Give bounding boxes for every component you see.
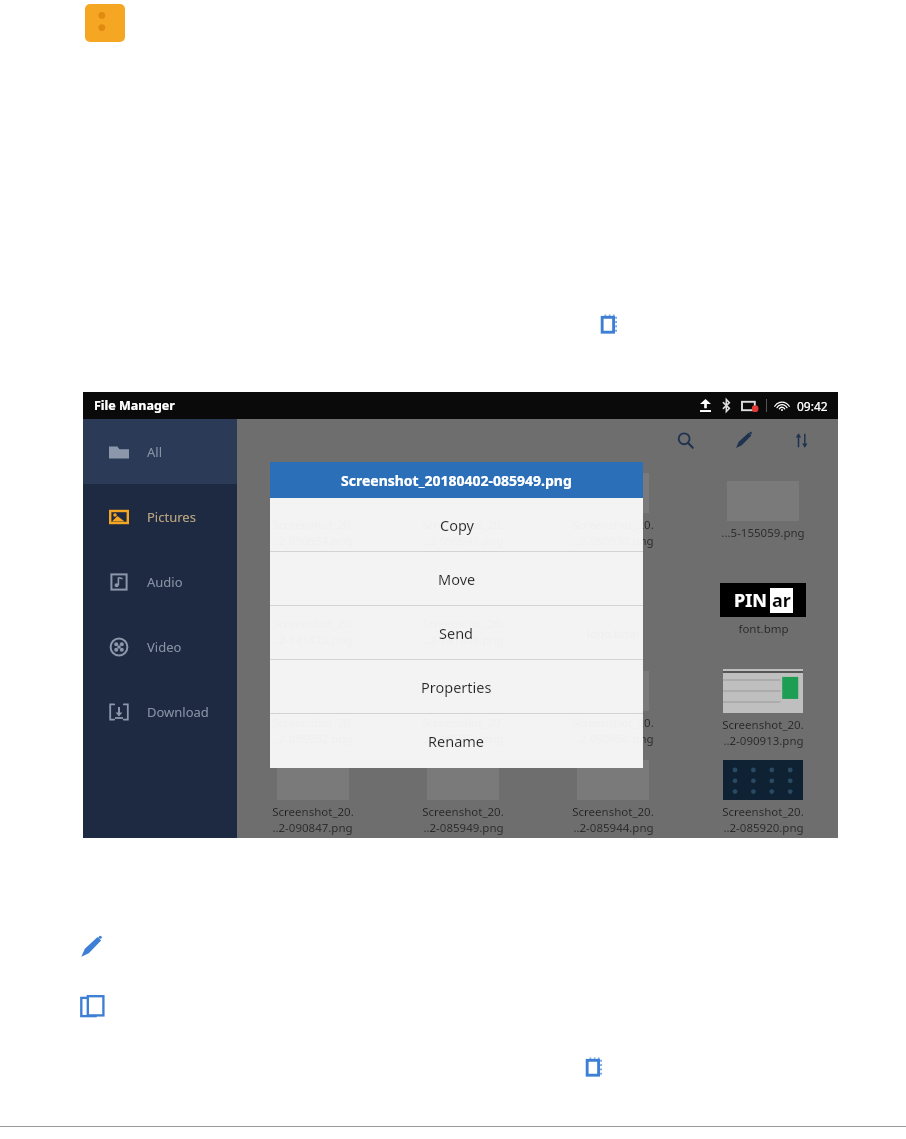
staticText: ..2-085944.png <box>573 820 654 836</box>
staticText: Screenshot_20180402-085949.png <box>341 471 572 490</box>
button[interactable]: Screenshot <box>598 313 624 337</box>
button[interactable]: All <box>83 419 237 484</box>
button[interactable]: Sort <box>786 425 816 455</box>
button[interactable]: Send <box>270 606 643 660</box>
button[interactable]: PIN <box>688 560 838 659</box>
staticText: Move <box>438 569 476 589</box>
staticText: Screenshot_20. <box>572 715 654 731</box>
staticText: ..2-090947.png <box>423 533 504 549</box>
button[interactable]: ...5-155059.png <box>688 461 838 560</box>
button[interactable]: Screenshot_20. <box>538 461 688 560</box>
button[interactable]: Screenshot_20. <box>388 659 538 758</box>
button[interactable]: Screenshot_20. <box>388 461 538 560</box>
button[interactable]: Copy <box>80 995 106 1019</box>
staticText: ..2-085920.png <box>723 820 804 836</box>
staticText: ..2-085949.png <box>423 820 504 836</box>
staticText: Screenshot_20. <box>422 804 504 820</box>
staticText: All <box>147 443 163 461</box>
button[interactable]: Screenshot_20. <box>388 560 538 659</box>
staticText: ..2-085951.png <box>423 731 504 747</box>
staticText: PIN <box>734 588 767 613</box>
staticText: ar <box>772 588 791 613</box>
staticText: Properties <box>421 677 492 697</box>
staticText: ..2-141408.png <box>423 632 504 648</box>
button[interactable]: Video <box>83 614 237 679</box>
staticText: Screenshot_20. <box>272 804 354 820</box>
staticText: Screenshot_20. <box>572 517 654 533</box>
button[interactable]: Screenshot_20. <box>388 758 538 838</box>
staticText: Screenshot_20. <box>422 517 504 533</box>
button[interactable]: Screenshot_20. <box>237 758 388 838</box>
staticText: File Manager <box>94 397 175 414</box>
staticText: ..2-090913.png <box>723 733 804 749</box>
button[interactable]: Audio <box>83 549 237 614</box>
button[interactable]: Copy <box>270 498 643 552</box>
staticText: Screenshot_20. <box>722 717 804 733</box>
button[interactable]: Edit <box>80 936 102 958</box>
button[interactable]: Screenshot_20. <box>237 659 388 758</box>
staticText: Rename <box>428 731 485 751</box>
button[interactable]: Screenshot_20. <box>237 461 388 560</box>
staticText: Send <box>439 623 474 643</box>
button[interactable]: Screenshot_20. <box>538 758 688 838</box>
button[interactable]: Search <box>670 425 700 455</box>
button[interactable]: Rename <box>270 714 643 768</box>
button[interactable]: Properties <box>270 660 643 714</box>
staticText: ..2-090847.png <box>272 820 353 836</box>
button[interactable]: App icon <box>85 4 125 42</box>
button[interactable]: Pictures <box>83 484 237 549</box>
button[interactable]: Download <box>83 679 237 744</box>
staticText: ..2-090950.png <box>573 731 654 747</box>
button[interactable]: Screenshot_20. <box>688 659 838 758</box>
button[interactable]: Move <box>270 552 643 606</box>
staticText: Pictures <box>147 508 196 526</box>
button[interactable]: Edit <box>728 425 758 455</box>
button[interactable]: Screenshot <box>583 1056 609 1080</box>
staticText: Screenshot_20. <box>572 804 654 820</box>
staticText: font.bmp <box>738 621 789 637</box>
staticText: Screenshot_20. <box>422 616 504 632</box>
staticText: Screenshot_20. <box>722 804 804 820</box>
staticText: Download <box>147 703 209 721</box>
button[interactable]: logo.bmp <box>538 560 688 659</box>
staticText: Audio <box>147 573 183 591</box>
staticText: 09:42 <box>797 398 828 414</box>
staticText: Video <box>147 638 182 656</box>
button[interactable]: Screenshot_20. <box>237 560 388 659</box>
button[interactable]: Screenshot_20. <box>538 659 688 758</box>
staticText: Copy <box>440 515 474 535</box>
staticText: ...5-155059.png <box>721 525 805 541</box>
button[interactable]: Screenshot_20. <box>688 758 838 838</box>
staticText: ..2-090930.png <box>573 533 654 549</box>
